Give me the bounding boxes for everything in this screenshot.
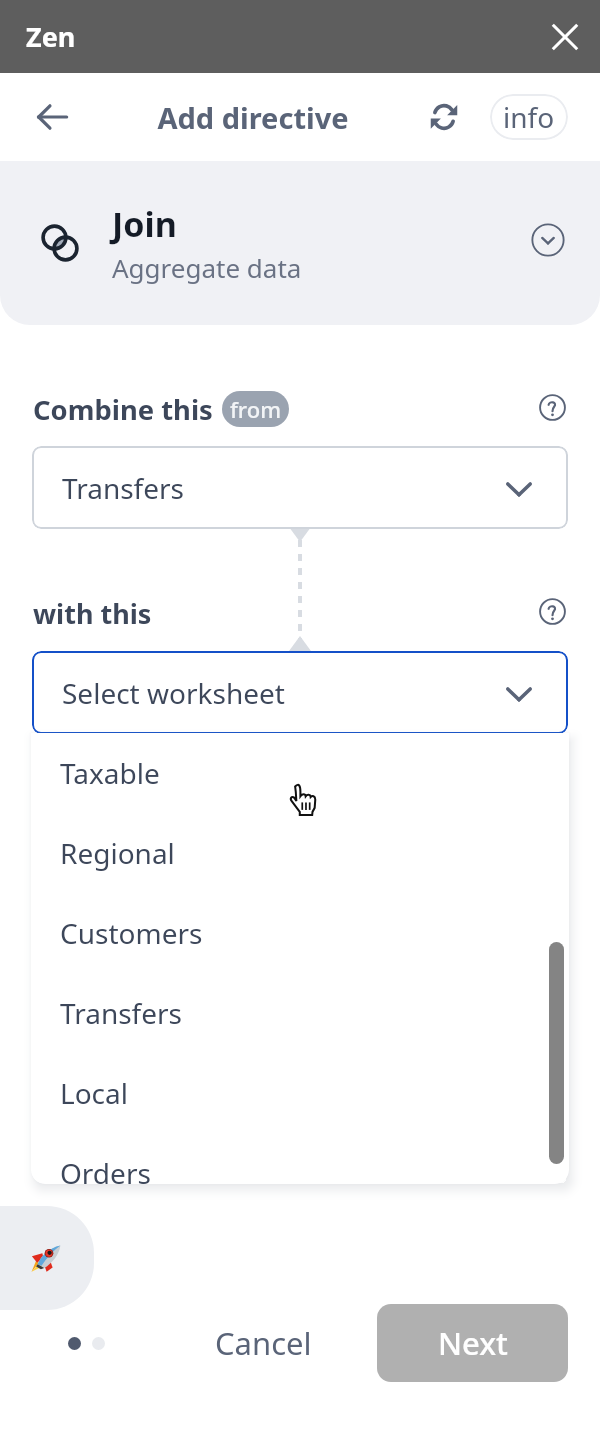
staticText: Local	[60, 1074, 128, 1112]
button[interactable]: Transfers	[32, 446, 568, 529]
button[interactable]: Cancel	[199, 1308, 328, 1378]
staticText: Orders	[60, 1154, 151, 1184]
button[interactable]: Expand	[526, 218, 570, 262]
staticText: Customers	[60, 914, 203, 952]
button[interactable]: Taxable	[60, 733, 569, 813]
staticText: Taxable	[60, 754, 160, 792]
button[interactable]: Refresh	[421, 92, 467, 138]
staticText: info	[503, 98, 555, 136]
staticText: Regional	[60, 834, 175, 872]
staticText: Combine this	[33, 391, 213, 428]
staticText: with this	[33, 595, 152, 632]
staticText: Aggregate data	[112, 250, 302, 285]
staticText: Select worksheet	[62, 674, 285, 712]
button[interactable]: Customers	[60, 893, 569, 973]
button[interactable]: Orders	[60, 1133, 569, 1184]
button[interactable]: Rocket	[0, 1206, 94, 1310]
button[interactable]: Select worksheet	[32, 651, 568, 734]
staticText: Join	[112, 201, 177, 247]
staticText: Cancel	[215, 1322, 312, 1364]
staticText: Add directive	[157, 98, 349, 137]
staticText: from	[230, 394, 281, 424]
staticText: Transfers	[60, 994, 182, 1032]
button[interactable]: Local	[60, 1053, 569, 1133]
button[interactable]: Help	[534, 389, 570, 425]
button[interactable]: Next	[377, 1304, 568, 1382]
button[interactable]: Back	[29, 94, 75, 140]
button[interactable]: Help	[534, 593, 570, 629]
button[interactable]: Regional	[60, 813, 569, 893]
button[interactable]: Join	[0, 161, 600, 325]
button[interactable]: Close	[542, 14, 588, 60]
button[interactable]: info	[490, 94, 568, 140]
staticText: Transfers	[62, 469, 184, 507]
staticText: Next	[438, 1322, 508, 1364]
staticText: Zen	[26, 18, 76, 55]
button[interactable]: Transfers	[60, 973, 569, 1053]
